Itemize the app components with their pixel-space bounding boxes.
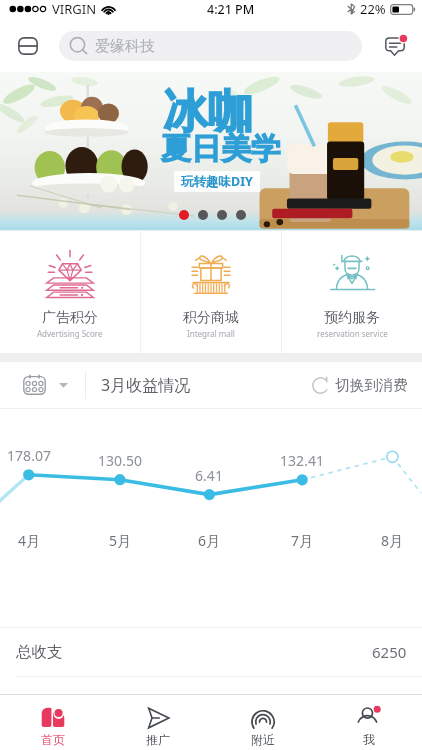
staticText: 130.50 <box>84 451 156 470</box>
staticText: 5月 <box>84 531 156 550</box>
button[interactable]: 预约服务 <box>282 231 422 353</box>
button[interactable]: 首页 <box>0 695 105 750</box>
staticText: 总收支 <box>16 642 63 662</box>
staticText: 切换到消费 <box>335 376 408 394</box>
staticText: 冰咖 <box>163 84 253 141</box>
staticText: 积分商城 <box>183 309 239 327</box>
staticText: 6月 <box>173 531 245 550</box>
staticText: 附近 <box>251 732 275 747</box>
staticText: 4:21 PM <box>207 1 255 18</box>
staticText: 爱缘科技 <box>95 37 155 56</box>
staticText: 132.41 <box>266 451 338 470</box>
staticText: 7月 <box>266 531 338 550</box>
staticText: 6250 <box>372 642 407 662</box>
button[interactable]: 积分商城 <box>141 231 281 353</box>
staticText: 夏日美学 <box>161 130 281 168</box>
staticText: 6.41 <box>173 466 245 485</box>
button[interactable]: 附近 <box>210 695 316 750</box>
staticText: reservation service <box>317 328 388 339</box>
button[interactable]: 推广 <box>105 695 210 750</box>
staticText: 3月收益情况 <box>101 374 191 396</box>
staticText: 178.07 <box>0 446 65 465</box>
staticText: 4月 <box>0 531 65 550</box>
button[interactable]: 切换到消费 <box>311 362 422 408</box>
staticText: 我 <box>363 732 375 747</box>
button[interactable]: 爱缘科技 <box>59 31 362 61</box>
button[interactable]: Pick month <box>0 362 85 408</box>
button[interactable]: 我 <box>316 695 422 750</box>
staticText: 22% <box>360 0 386 18</box>
staticText: 推广 <box>146 732 170 747</box>
staticText: 广告积分 <box>42 309 98 327</box>
button[interactable]: 总收支 <box>0 628 422 676</box>
staticText: Integral mall <box>187 328 235 339</box>
staticText: 玩转趣味DIY <box>181 173 253 190</box>
staticText: 预约服务 <box>324 309 380 327</box>
button[interactable]: Messages <box>372 24 420 68</box>
staticText: 8月 <box>356 531 422 550</box>
staticText: Advertising Score <box>37 328 103 339</box>
button[interactable]: Menu <box>5 24 51 68</box>
staticText: 首页 <box>41 732 65 747</box>
staticText: VIRGIN <box>52 0 97 18</box>
button[interactable]: 广告积分 <box>0 231 140 353</box>
